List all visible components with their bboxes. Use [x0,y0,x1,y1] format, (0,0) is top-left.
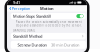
staticText: Pauses the session automatically once mo… [16,20,82,27]
staticText: STANDSTILL DETAIL [13,29,35,32]
button[interactable]: Motion Stops Standstill [11,13,86,19]
staticText: 9:41 [13,0,20,5]
staticText: Perception [12,6,30,11]
staticText: Motion Stops Standstill [13,13,51,19]
button[interactable]: Set new Duration [11,41,86,49]
button[interactable]: Standstill Method [11,33,86,39]
button[interactable]: Perception [7,5,30,12]
staticText: Motion [40,6,54,11]
staticText: Set new Duration [17,42,46,47]
staticText: Standstill Method [13,33,42,39]
staticText: 30 min Duration [51,42,79,47]
